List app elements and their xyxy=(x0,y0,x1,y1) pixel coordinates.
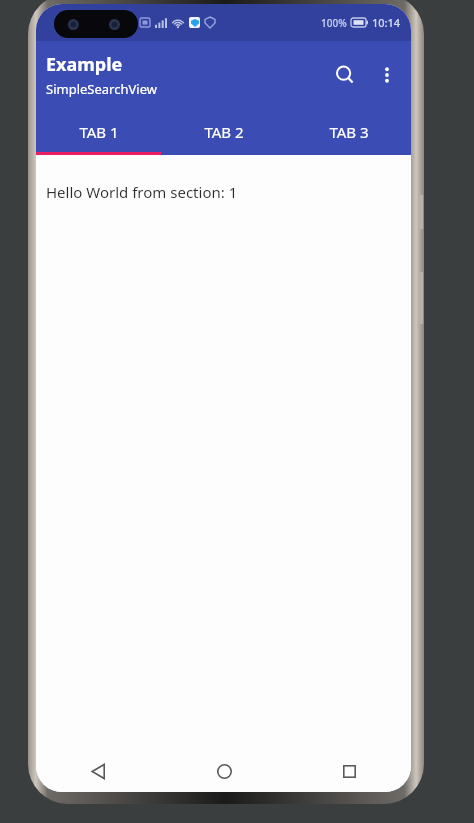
button[interactable]: Recent apps xyxy=(327,750,371,792)
staticText: TAB 3 xyxy=(329,122,369,142)
staticText: 100% xyxy=(321,16,347,30)
staticText: SimpleSearchView xyxy=(46,80,157,98)
staticText: Hello World from section: 1 xyxy=(46,182,238,202)
staticText: TAB 2 xyxy=(204,122,244,142)
button[interactable]: Back xyxy=(76,750,120,792)
button[interactable]: TAB 1 xyxy=(36,109,161,155)
button[interactable]: Search xyxy=(323,53,367,97)
staticText: Example xyxy=(46,52,123,77)
button[interactable]: More options xyxy=(367,55,407,95)
staticText: TAB 1 xyxy=(79,122,119,142)
staticText: 10:14 xyxy=(372,15,401,30)
button[interactable]: Home xyxy=(202,750,246,792)
button[interactable]: TAB 3 xyxy=(286,109,411,155)
button[interactable]: TAB 2 xyxy=(161,109,286,155)
